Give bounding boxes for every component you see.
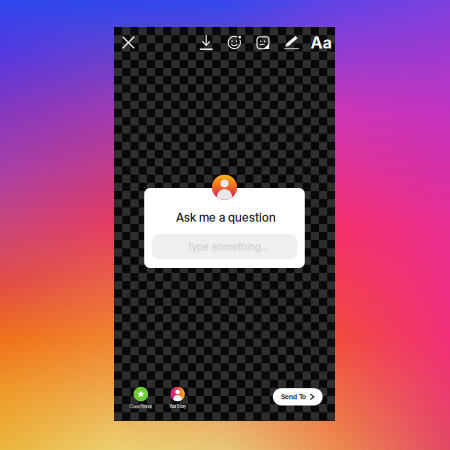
- button[interactable]: Effects: [227, 35, 242, 50]
- button[interactable]: Close Friends: [129, 387, 152, 409]
- staticText: Aa: [311, 33, 332, 52]
- staticText: Send To: [281, 393, 306, 401]
- button[interactable]: Save to camera roll: [199, 34, 213, 50]
- staticText: Ask me a question: [176, 210, 276, 225]
- staticText: Your Story: [169, 404, 186, 409]
- staticText: Close Friends: [129, 404, 152, 409]
- button[interactable]: Your Story: [169, 387, 186, 409]
- button[interactable]: Stickers: [256, 36, 270, 49]
- staticText: Type something...: [187, 240, 267, 253]
- button[interactable]: Draw: [284, 35, 299, 49]
- button[interactable]: Text: [311, 33, 332, 52]
- button[interactable]: Send To: [273, 388, 323, 405]
- button[interactable]: Close: [122, 36, 135, 49]
